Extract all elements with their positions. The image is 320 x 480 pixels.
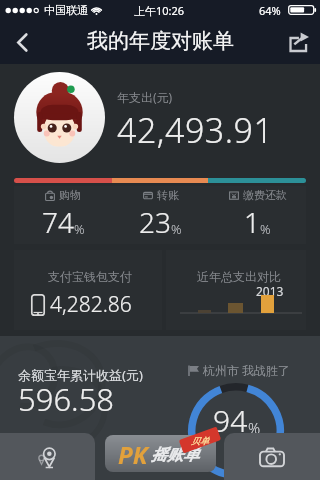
staticText: 42,493.91 [117,107,274,153]
staticText: 转账 [157,188,179,202]
staticText: 我的年度对账单 [87,28,234,54]
staticText: 4,282.86 [50,290,132,319]
staticText: % [171,220,182,238]
staticText: 支付宝钱包支付 [48,269,132,284]
staticText: 贝单 [191,435,209,446]
staticText: 摇账单 [151,445,199,465]
staticText: 596.58 [18,378,115,420]
button[interactable]: Nearby [0,433,95,480]
button[interactable]: 支付宝钱包支付 [0,258,160,343]
staticText: % [74,220,85,238]
staticText: 中国联通 [44,3,88,17]
staticText: 74 [42,203,74,241]
button[interactable]: Camera [224,433,320,480]
staticText: % [248,418,261,438]
staticText: 64% [259,3,281,18]
staticText: 近年总支出对比 [197,269,281,284]
staticText: % [260,220,271,238]
button[interactable]: 缴费还款 [209,188,306,241]
button[interactable]: PK [105,435,216,472]
button[interactable]: 近年总支出对比 [160,258,320,343]
staticText: 年支出(元) [117,89,173,105]
staticText: 1 [244,203,260,241]
staticText: 缴费还款 [243,188,287,202]
staticText: 2013 [256,283,284,299]
staticText: 94 [213,400,248,441]
button[interactable]: 购物 [14,188,112,241]
staticText: 余额宝年累计收益(元) [18,366,143,384]
staticText: 杭州市 我战胜了 [203,362,291,378]
button[interactable]: Back [0,20,44,64]
staticText: 23 [139,203,171,241]
staticText: PK [118,438,148,471]
staticText: 购物 [59,188,81,202]
button[interactable]: 转账 [112,188,209,241]
staticText: 上午10:26 [134,3,185,18]
button[interactable]: Share [276,20,320,64]
